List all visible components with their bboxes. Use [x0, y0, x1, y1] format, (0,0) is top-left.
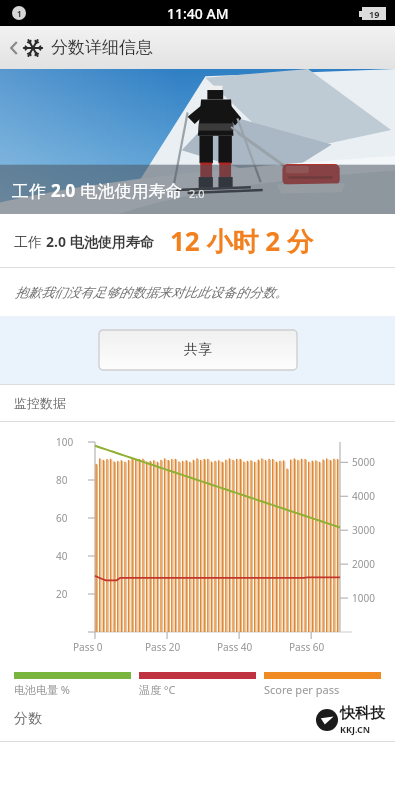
staticText: Pass 60	[289, 640, 325, 654]
staticText: 分数	[14, 710, 42, 728]
staticText: 共享	[184, 341, 212, 359]
staticText: 20	[56, 587, 68, 601]
staticText: 4000	[352, 489, 375, 503]
staticText: 抱歉我们没有足够的数据来对比此设备的分数。	[15, 284, 288, 300]
staticText: KKJ.CN	[340, 723, 371, 735]
staticText: 温度 °C	[139, 682, 176, 697]
staticText: 100	[56, 435, 74, 449]
staticText: 19	[369, 8, 380, 20]
staticText: 5000	[352, 455, 375, 469]
staticText: 2.0	[189, 186, 205, 201]
staticText: 11:40 AM	[167, 4, 229, 23]
staticText: 2000	[352, 557, 375, 571]
staticText: 工作	[14, 232, 46, 251]
button[interactable]: 共享	[99, 330, 297, 370]
staticText: Pass 0	[73, 640, 103, 654]
staticText: 12 小时 2 分	[170, 223, 313, 259]
staticText: 快科技	[340, 704, 385, 723]
staticText: Score per pass	[264, 682, 340, 697]
staticText: 电池使用寿命	[76, 179, 183, 202]
staticText: 分数详细信息	[51, 37, 153, 58]
staticText: 电池使用寿命	[66, 232, 154, 251]
staticText: 40	[56, 549, 68, 563]
staticText: 监控数据	[14, 395, 66, 411]
staticText: 1	[17, 8, 22, 19]
button[interactable]: 分数详细信息	[6, 37, 156, 58]
staticText: 2.0	[46, 232, 66, 251]
staticText: 1000	[352, 591, 375, 605]
staticText: 60	[56, 511, 68, 525]
staticText: 2.0	[51, 179, 76, 202]
staticText: Pass 20	[145, 640, 181, 654]
staticText: Pass 40	[217, 640, 253, 654]
staticText: 80	[56, 473, 68, 487]
staticText: 电池电量 %	[14, 682, 71, 697]
staticText: 3000	[352, 523, 375, 537]
staticText: 工作	[12, 179, 51, 202]
